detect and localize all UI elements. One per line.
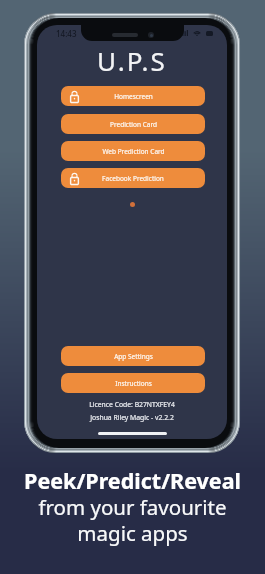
button[interactable]: Instructions xyxy=(61,373,205,393)
staticText: Facebook Prediction xyxy=(102,174,164,183)
staticText: Prediction Card xyxy=(110,120,157,129)
staticText: Licence Code: B27NTXFEY4 xyxy=(37,400,227,409)
button[interactable]: Web Prediction Card xyxy=(61,141,205,161)
staticText: Joshua Riley Magic - v2.2.2 xyxy=(37,413,227,422)
button[interactable]: App Settings xyxy=(61,346,205,366)
staticText: U.P.S xyxy=(37,43,227,78)
staticText: Peek/Predict/Reveal xyxy=(24,466,241,495)
staticText: Web Prediction Card xyxy=(102,147,165,156)
staticText: Instructions xyxy=(115,379,152,388)
staticText: Homescreen xyxy=(114,92,153,101)
button[interactable]: Facebook Prediction xyxy=(61,168,205,188)
staticText: from your favourite magic apps xyxy=(38,493,227,547)
button[interactable]: Homescreen xyxy=(61,86,205,106)
staticText: 14:43 xyxy=(56,28,77,39)
staticText: App Settings xyxy=(114,352,153,361)
button[interactable]: Prediction Card xyxy=(61,114,205,134)
